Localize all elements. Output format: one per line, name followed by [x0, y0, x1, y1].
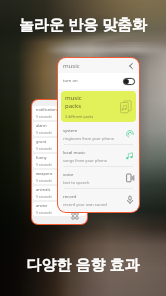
- staticText: 5 seconds: [36, 114, 52, 119]
- button[interactable]: turn on: [58, 73, 139, 89]
- staticText: animals: [36, 187, 51, 192]
- staticText: voice: [63, 171, 74, 177]
- staticText: turn on: [63, 78, 78, 84]
- button[interactable]: funny: [33, 154, 86, 168]
- button[interactable]: alarm: [33, 122, 86, 136]
- staticText: 놀라운 반응 맞춤화: [0, 14, 166, 34]
- staticText: local music: [63, 149, 86, 155]
- staticText: music: [63, 62, 80, 70]
- staticText: 다양한 음향 효과: [0, 254, 166, 274]
- staticText: 5 seconds: [36, 162, 52, 167]
- staticText: 5 seconds: [36, 210, 52, 215]
- staticText: text to speech: [63, 180, 90, 185]
- staticText: songs from your phone: [63, 158, 108, 163]
- staticText: ringtones from your phone: [63, 136, 115, 141]
- staticText: 5 seconds: [36, 130, 52, 135]
- staticText: 3 different packs: [65, 114, 94, 119]
- button[interactable]: system: [58, 123, 139, 144]
- button[interactable]: Back: [126, 61, 135, 70]
- staticText: 5 seconds: [36, 178, 52, 183]
- button[interactable]: grunt: [33, 138, 86, 152]
- staticText: 5 seconds: [36, 194, 52, 199]
- button[interactable]: music packs: [61, 91, 136, 122]
- staticText: music packs: [65, 94, 82, 110]
- button[interactable]: anime: [33, 202, 86, 216]
- other: Categories: [71, 212, 79, 220]
- staticText: record your own sound: [63, 202, 107, 207]
- staticText: funny: [36, 155, 47, 160]
- staticText: anime: [36, 203, 48, 208]
- staticText: 5 seconds: [36, 146, 52, 151]
- button[interactable]: animals: [33, 186, 86, 200]
- button[interactable]: local music: [58, 145, 139, 166]
- staticText: alarm: [36, 123, 47, 128]
- button[interactable]: record: [58, 189, 139, 210]
- button[interactable]: voice: [58, 167, 139, 188]
- button[interactable]: notification: [33, 106, 86, 120]
- button[interactable]: weapons: [33, 170, 86, 184]
- staticText: system: [63, 127, 78, 133]
- staticText: notification: [36, 107, 57, 112]
- staticText: weapons: [36, 171, 53, 176]
- staticText: grunt: [36, 139, 47, 144]
- staticText: record: [63, 193, 77, 199]
